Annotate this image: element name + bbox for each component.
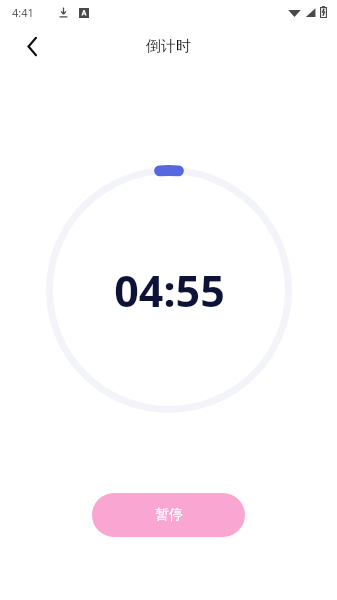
staticText: 暂停: [155, 506, 183, 524]
staticText: 04:55: [114, 261, 225, 320]
staticText: 倒计时: [146, 37, 191, 56]
button[interactable]: 暂停: [92, 493, 245, 537]
staticText: 4:41: [12, 5, 34, 20]
button[interactable]: Back: [12, 26, 52, 66]
